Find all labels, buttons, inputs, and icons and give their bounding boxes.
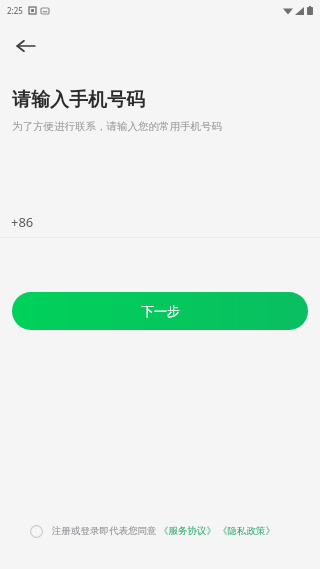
staticText: +86 xyxy=(11,213,34,231)
staticText: 《隐私政策》 xyxy=(218,525,275,537)
staticText: 《服务协议》 xyxy=(159,525,216,537)
staticText: 注册或登录即代表您同意 xyxy=(52,525,157,537)
button[interactable]: 《服务协议》 xyxy=(159,525,216,537)
staticText: 请输入手机号码 xyxy=(12,88,145,112)
button[interactable]: 《隐私政策》 xyxy=(218,525,275,537)
staticText: 为了方便进行联系，请输入您的常用手机号码 xyxy=(12,120,222,133)
button[interactable]: 下一步 xyxy=(12,292,308,330)
button[interactable]: Back xyxy=(6,26,46,66)
button[interactable]: +86 xyxy=(0,207,320,237)
button[interactable]: Agree checkbox xyxy=(26,521,46,541)
staticText: 下一步 xyxy=(141,303,180,319)
staticText: 2:25 xyxy=(7,5,23,16)
